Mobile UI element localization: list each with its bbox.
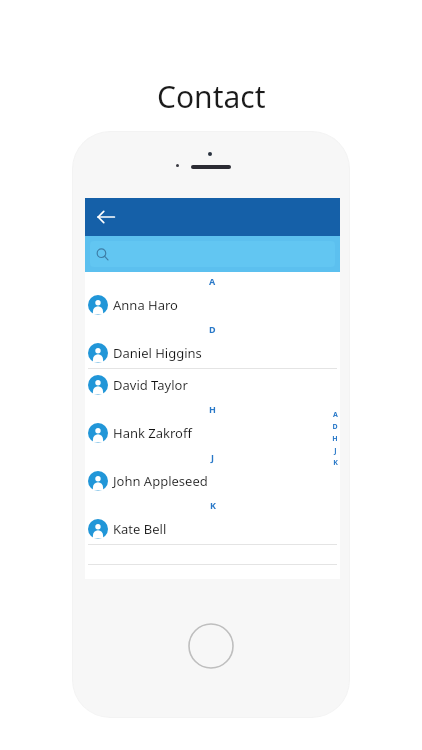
staticText: K bbox=[333, 458, 338, 468]
staticText: D bbox=[332, 422, 338, 432]
staticText: J bbox=[334, 446, 337, 456]
staticText: Hank Zakroff bbox=[113, 424, 192, 442]
button[interactable]: John Appleseed bbox=[85, 465, 340, 496]
staticText: David Taylor bbox=[113, 376, 188, 394]
staticText: D bbox=[209, 323, 216, 335]
button[interactable]: David Taylor bbox=[85, 369, 340, 400]
button[interactable]: Back bbox=[92, 203, 120, 231]
staticText: John Appleseed bbox=[113, 472, 208, 490]
staticText: Kate Bell bbox=[113, 520, 167, 538]
staticText: A bbox=[333, 410, 338, 420]
staticText: Contact bbox=[157, 76, 266, 117]
staticText: J bbox=[211, 451, 214, 463]
button[interactable] bbox=[90, 241, 335, 267]
staticText: A bbox=[209, 275, 216, 287]
button[interactable]: Kate Bell bbox=[85, 513, 340, 544]
staticText: K bbox=[210, 499, 216, 511]
button[interactable]: Hank Zakroff bbox=[85, 417, 340, 448]
button[interactable]: Daniel Higgins bbox=[85, 337, 340, 368]
staticText: Anna Haro bbox=[113, 296, 178, 314]
button[interactable]: Alphabet index bbox=[332, 409, 338, 469]
staticText: Daniel Higgins bbox=[113, 344, 202, 362]
button[interactable]: Anna Haro bbox=[85, 289, 340, 320]
staticText: H bbox=[209, 403, 216, 415]
staticText: H bbox=[332, 434, 338, 444]
